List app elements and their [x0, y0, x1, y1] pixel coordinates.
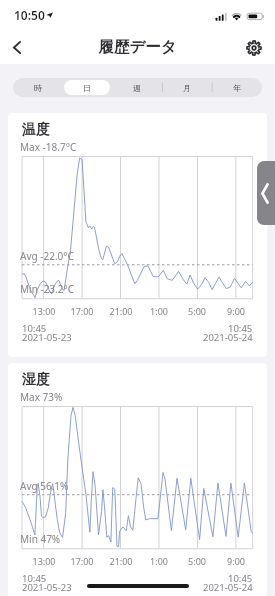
button[interactable]: Open side panel	[257, 161, 275, 225]
staticText: 10:50	[14, 7, 45, 23]
staticText: Avg -22.0°C	[20, 249, 74, 263]
staticText: Max 73%	[20, 390, 63, 404]
staticText: 9:00	[210, 555, 262, 567]
button[interactable]: Back	[1, 30, 33, 64]
staticText: 10:45	[22, 322, 47, 335]
staticText: 21:00	[95, 555, 147, 567]
staticText: 2021-05-23	[22, 581, 72, 594]
staticText: 月	[183, 83, 191, 93]
staticText: 13:00	[18, 555, 70, 567]
staticText: 17:00	[56, 305, 108, 317]
staticText: 1:00	[133, 555, 185, 567]
staticText: 2021-05-24	[203, 331, 253, 344]
button[interactable]: 年	[214, 80, 260, 95]
button[interactable]: 日	[64, 80, 110, 95]
staticText: 温度	[22, 121, 50, 139]
staticText: 9:00	[210, 305, 262, 317]
staticText: Min 47%	[20, 532, 61, 546]
staticText: 21:00	[95, 305, 147, 317]
staticText: 10:45	[228, 572, 253, 585]
staticText: Min -23.2°C	[20, 282, 75, 296]
staticText: 時	[34, 83, 42, 93]
button[interactable]: 週	[114, 80, 160, 95]
staticText: 5:00	[171, 555, 223, 567]
staticText: 週	[133, 83, 141, 93]
button[interactable]: 月	[164, 80, 210, 95]
staticText: 1:00	[133, 305, 185, 317]
staticText: 10:45	[22, 572, 47, 585]
staticText: 2021-05-23	[22, 331, 72, 344]
staticText: 10:45	[228, 322, 253, 335]
staticText: 年	[233, 83, 241, 93]
staticText: Max -18.7°C	[20, 140, 77, 154]
staticText: Avg 56.1%	[20, 479, 69, 493]
button[interactable]: 時	[15, 80, 60, 95]
staticText: 13:00	[18, 305, 70, 317]
staticText: 日	[83, 83, 91, 93]
staticText: 17:00	[56, 555, 108, 567]
button[interactable]: Settings	[238, 32, 270, 64]
staticText: 5:00	[171, 305, 223, 317]
staticText: 湿度	[22, 371, 50, 389]
staticText: 2021-05-24	[203, 581, 253, 594]
staticText: 履歴データ	[0, 37, 275, 57]
